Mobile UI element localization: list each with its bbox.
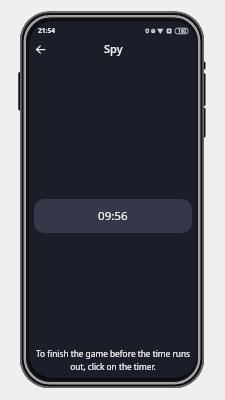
button[interactable]: 09:56 <box>34 199 192 233</box>
button[interactable]: Back <box>29 38 51 60</box>
staticText: 100 <box>178 28 186 34</box>
staticText: Spy <box>104 41 123 56</box>
staticText: To finish the game before the time runs … <box>29 348 197 372</box>
staticText: 09:56 <box>98 208 128 224</box>
staticText: 21:54 <box>38 26 55 35</box>
